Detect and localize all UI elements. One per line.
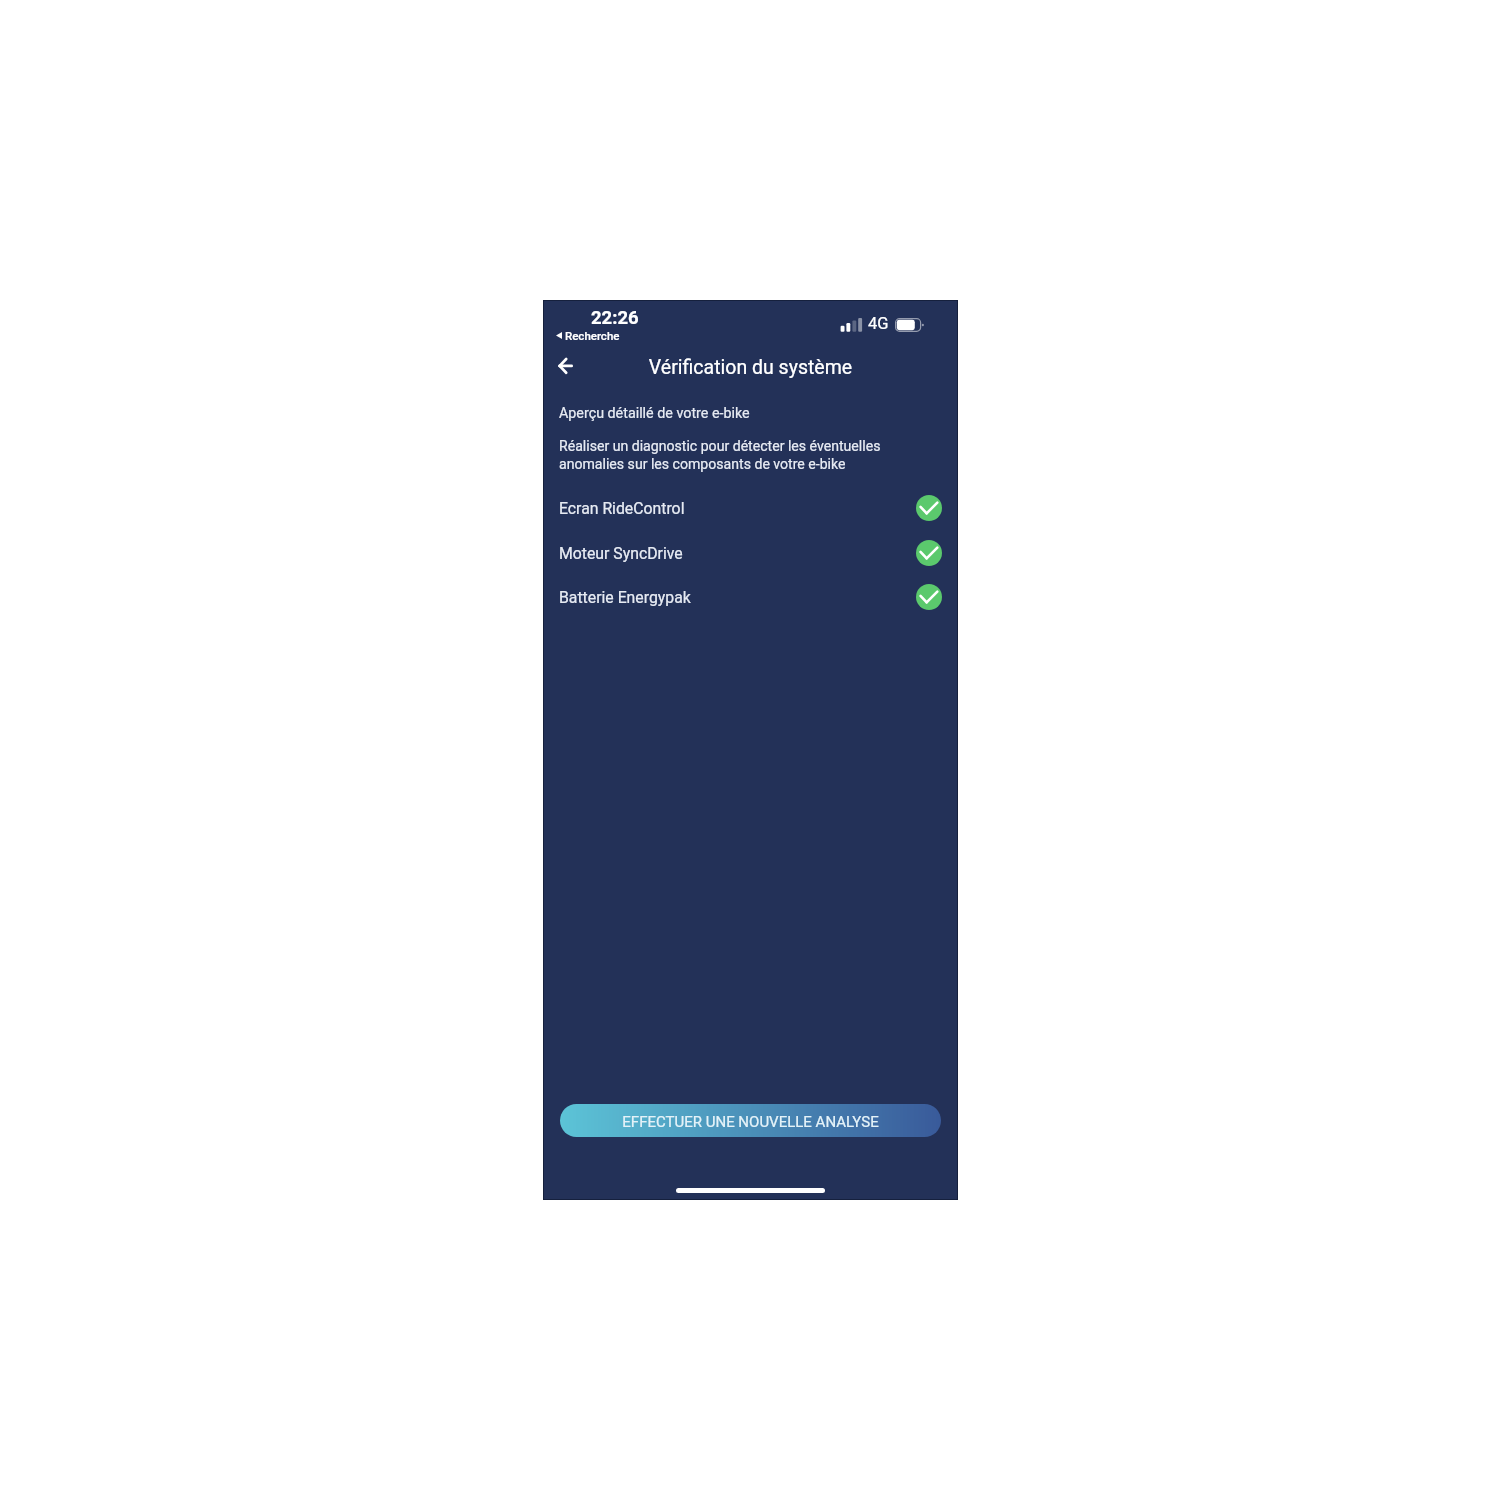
staticText: 4G <box>868 314 889 333</box>
staticText: Moteur SyncDrive <box>559 544 683 563</box>
staticText: Batterie Energypak <box>559 588 691 607</box>
staticText: Recherche <box>565 329 620 342</box>
staticText: 22:26 <box>591 307 639 329</box>
button[interactable]: Back <box>543 342 591 390</box>
staticText: Réaliser un diagnostic pour détecter les… <box>559 438 881 472</box>
staticText: Vérification du système <box>543 356 958 379</box>
staticText: Aperçu détaillé de votre e-bike <box>559 405 750 422</box>
button[interactable]: EFFECTUER UNE NOUVELLE ANALYSE <box>560 1104 941 1137</box>
button[interactable]: Ecran RideControl <box>543 486 958 530</box>
staticText: EFFECTUER UNE NOUVELLE ANALYSE <box>622 1113 879 1131</box>
other: Statut : OK <box>916 495 942 521</box>
staticText: Ecran RideControl <box>559 499 685 518</box>
button[interactable]: Moteur SyncDrive <box>543 531 958 575</box>
other: Statut : OK <box>916 584 942 610</box>
button[interactable]: Batterie Energypak <box>543 575 958 619</box>
other: Statut : OK <box>916 540 942 566</box>
